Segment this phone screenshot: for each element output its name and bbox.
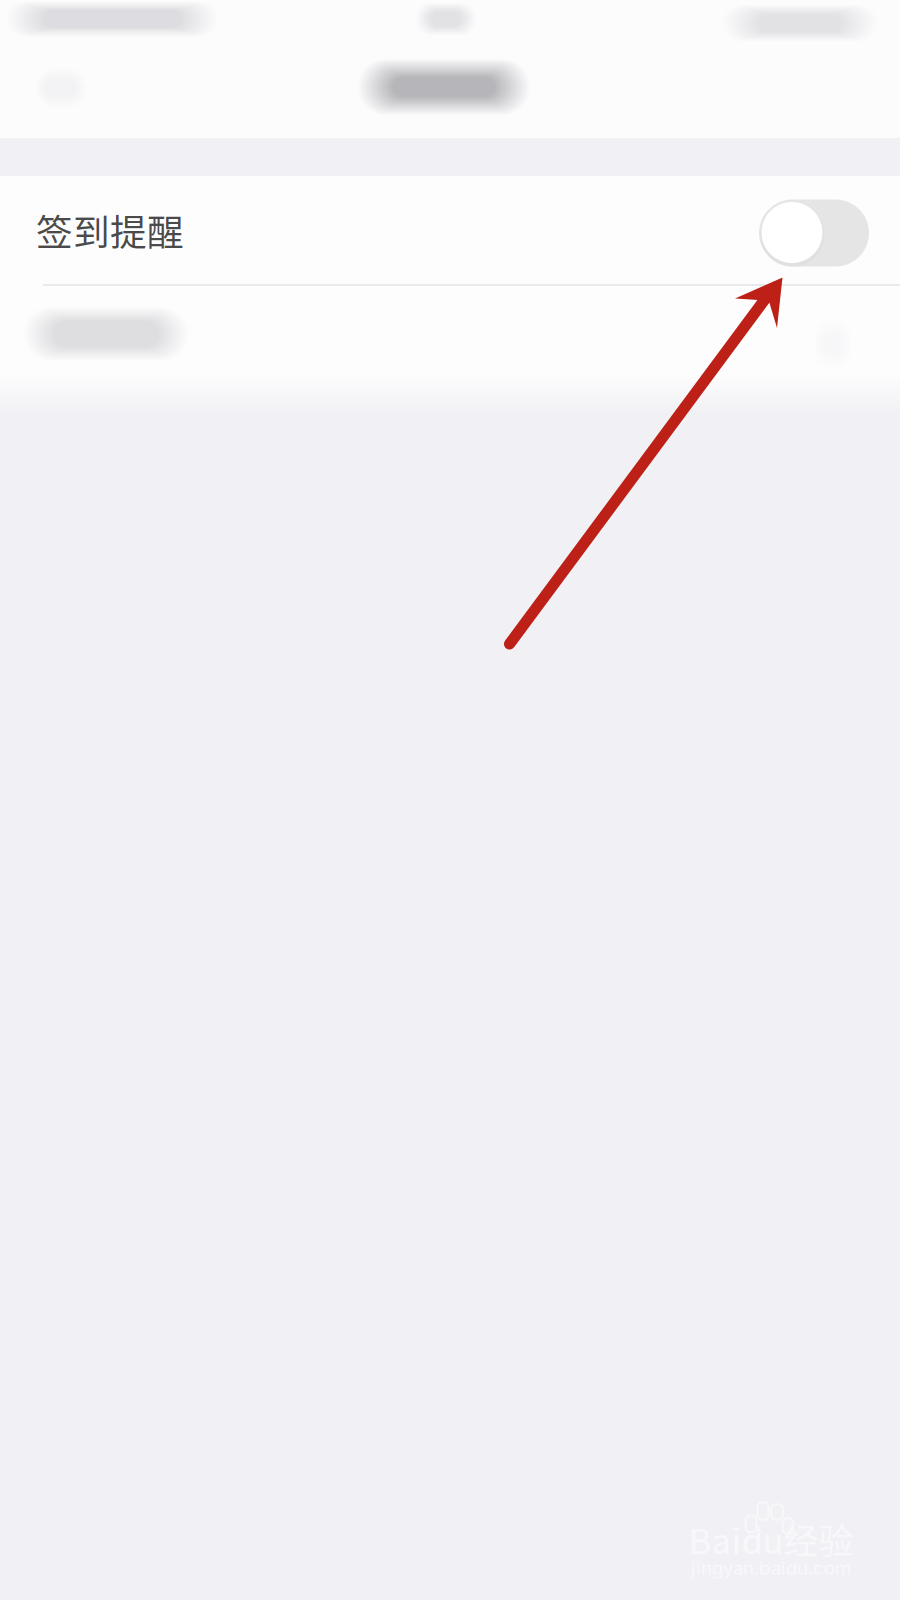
button[interactable]: 签到提醒 bbox=[0, 176, 900, 284]
button[interactable] bbox=[0, 286, 900, 394]
staticText: 签到提醒 bbox=[36, 203, 184, 257]
